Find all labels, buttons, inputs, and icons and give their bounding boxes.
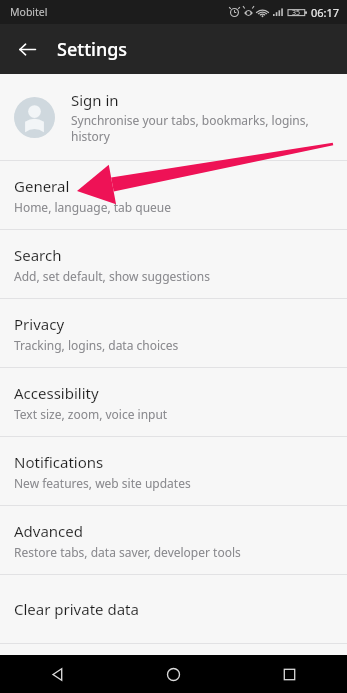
button[interactable]: General xyxy=(0,161,347,229)
button[interactable]: Privacy xyxy=(0,299,347,367)
staticText: Advanced xyxy=(14,521,84,541)
staticText: Accessibility xyxy=(14,383,99,403)
button[interactable]: Notifications xyxy=(0,437,347,505)
button[interactable]: Advanced xyxy=(0,506,347,574)
staticText: 06:17 xyxy=(311,5,340,20)
staticText: Add, set default, show suggestions xyxy=(14,268,210,284)
button[interactable]: Sign in xyxy=(0,74,347,160)
staticText: Clear private data xyxy=(14,599,139,619)
button[interactable]: Recent apps xyxy=(231,655,347,693)
staticText: General xyxy=(14,176,70,196)
staticText: Mobitel xyxy=(10,5,48,19)
staticText: Search xyxy=(14,245,62,265)
staticText: Text size, zoom, voice input xyxy=(14,406,168,422)
button[interactable]: Search xyxy=(0,230,347,298)
staticText: Sign in xyxy=(71,90,119,110)
button[interactable]: Accessibility xyxy=(0,368,347,436)
staticText: Synchronise your tabs, bookmarks, logins… xyxy=(71,112,333,144)
staticText: Restore tabs, data saver, developer tool… xyxy=(14,544,241,560)
button[interactable]: Home xyxy=(115,655,231,693)
button[interactable]: Clear private data xyxy=(0,575,347,643)
button[interactable]: Back xyxy=(0,655,115,693)
staticText: Home, language, tab queue xyxy=(14,199,172,215)
button[interactable]: Back xyxy=(11,33,43,65)
staticText: Settings xyxy=(57,37,128,62)
staticText: New features, web site updates xyxy=(14,475,191,491)
staticText: Tracking, logins, data choices xyxy=(14,337,179,353)
staticText: 35 xyxy=(292,8,301,18)
staticText: Notifications xyxy=(14,452,104,472)
staticText: Privacy xyxy=(14,314,65,334)
